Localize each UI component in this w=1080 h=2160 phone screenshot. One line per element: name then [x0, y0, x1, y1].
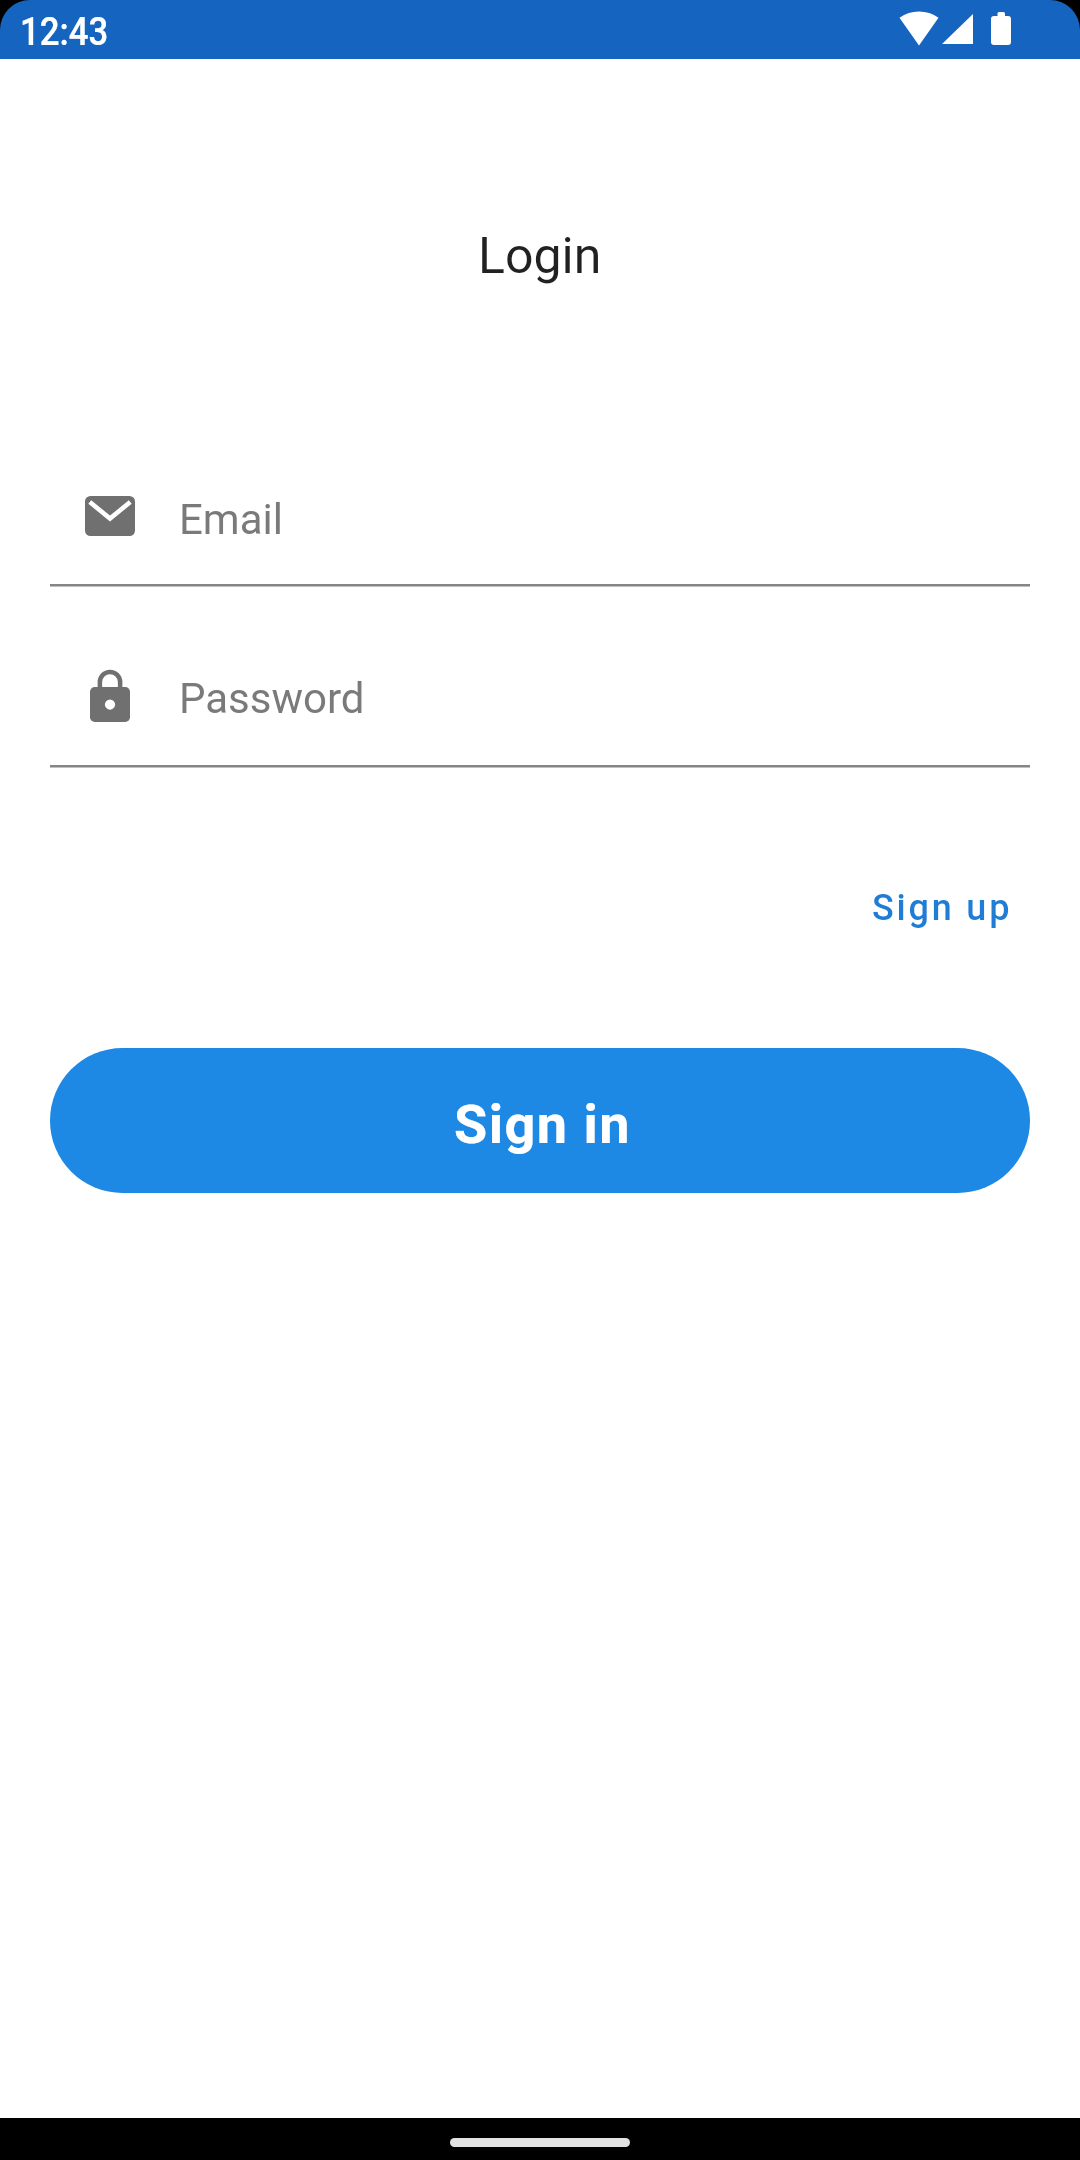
button[interactable]: Email	[50, 470, 1030, 587]
button[interactable]: Sign up	[854, 869, 1031, 947]
staticText: Sign up	[872, 887, 1013, 929]
staticText: Email	[179, 495, 283, 544]
button[interactable]: Password	[50, 651, 1030, 768]
button[interactable]: Sign in	[50, 1048, 1030, 1193]
staticText: 12:43	[20, 10, 109, 55]
staticText: Sign in	[454, 1093, 632, 1156]
staticText: Login	[478, 227, 602, 286]
staticText: Password	[179, 674, 365, 723]
